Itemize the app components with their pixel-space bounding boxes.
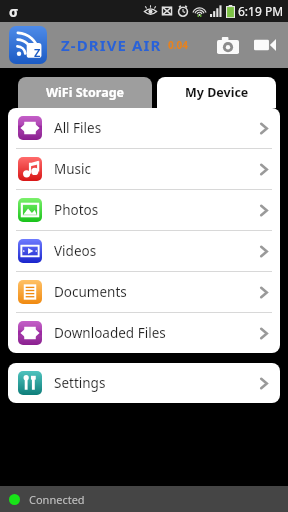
staticText: My Device xyxy=(185,84,249,101)
button[interactable]: Videos xyxy=(8,231,280,271)
button[interactable]: Settings xyxy=(8,363,280,403)
staticText: Settings xyxy=(54,374,106,392)
staticText: All Files xyxy=(54,119,102,137)
button[interactable]: My Device xyxy=(157,77,276,108)
staticText: 0.04 xyxy=(168,38,188,52)
button[interactable]: Camera xyxy=(210,27,246,63)
staticText: Music xyxy=(54,160,92,178)
button[interactable]: Music xyxy=(8,149,280,189)
staticText: Photos xyxy=(54,201,99,219)
button[interactable]: Record video xyxy=(246,26,284,64)
button[interactable]: Documents xyxy=(8,272,280,312)
staticText: Downloaded Files xyxy=(54,324,166,342)
staticText: Documents xyxy=(54,283,127,301)
staticText: Z xyxy=(34,45,41,60)
staticText: 6:19 PM xyxy=(238,3,284,19)
button[interactable]: Z-Drive Air logo xyxy=(9,26,47,64)
staticText: Videos xyxy=(54,242,97,260)
staticText: Connected xyxy=(29,492,85,507)
button[interactable]: Connected xyxy=(0,486,288,512)
staticText: σ xyxy=(9,2,19,21)
staticText: WiFi Storage xyxy=(46,84,124,101)
button[interactable]: All Files xyxy=(8,108,280,148)
button[interactable]: Downloaded Files xyxy=(8,313,280,353)
staticText: Z-DRIVE AIR xyxy=(61,35,162,55)
button[interactable]: WiFi Storage xyxy=(18,77,152,108)
button[interactable]: Photos xyxy=(8,190,280,230)
